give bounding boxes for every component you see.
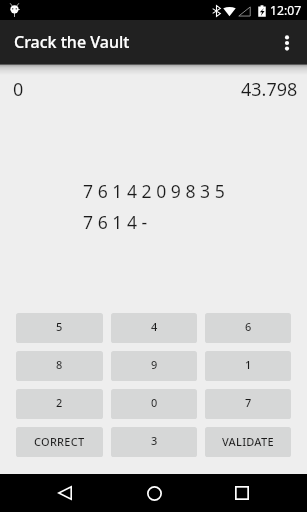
button[interactable]: Back: [41, 474, 89, 512]
button[interactable]: More options: [267, 22, 307, 62]
staticText: 0: [13, 77, 24, 102]
staticText: 3: [151, 433, 158, 448]
staticText: 7 6 1 4 2 0 9 8 3 5: [83, 179, 225, 203]
button[interactable]: 6: [205, 313, 291, 343]
staticText: 4: [151, 319, 158, 334]
button[interactable]: VALIDATE: [205, 427, 291, 457]
staticText: 5: [56, 319, 63, 334]
button[interactable]: CORRECT: [16, 427, 103, 457]
button[interactable]: Recent apps: [218, 474, 266, 512]
staticText: 8: [56, 357, 63, 372]
staticText: 7 6 1 4 -: [83, 210, 148, 234]
staticText: 0: [151, 395, 158, 410]
staticText: 43.798: [241, 77, 298, 102]
button[interactable]: 1: [205, 351, 291, 381]
staticText: VALIDATE: [222, 434, 274, 449]
button[interactable]: 8: [16, 351, 103, 381]
button[interactable]: 2: [16, 389, 103, 419]
staticText: 6: [245, 319, 252, 334]
button[interactable]: 5: [16, 313, 103, 343]
staticText: 7: [245, 395, 252, 410]
button[interactable]: Home: [130, 474, 178, 512]
button[interactable]: 4: [111, 313, 197, 343]
button[interactable]: 7: [205, 389, 291, 419]
staticText: 9: [151, 357, 158, 372]
staticText: 12:07: [270, 2, 302, 19]
button[interactable]: 0: [111, 389, 197, 419]
staticText: 2: [56, 395, 63, 410]
staticText: Crack the Vault: [14, 31, 130, 53]
button[interactable]: 9: [111, 351, 197, 381]
staticText: CORRECT: [34, 434, 85, 449]
button[interactable]: 3: [111, 427, 197, 457]
staticText: 1: [245, 357, 252, 372]
